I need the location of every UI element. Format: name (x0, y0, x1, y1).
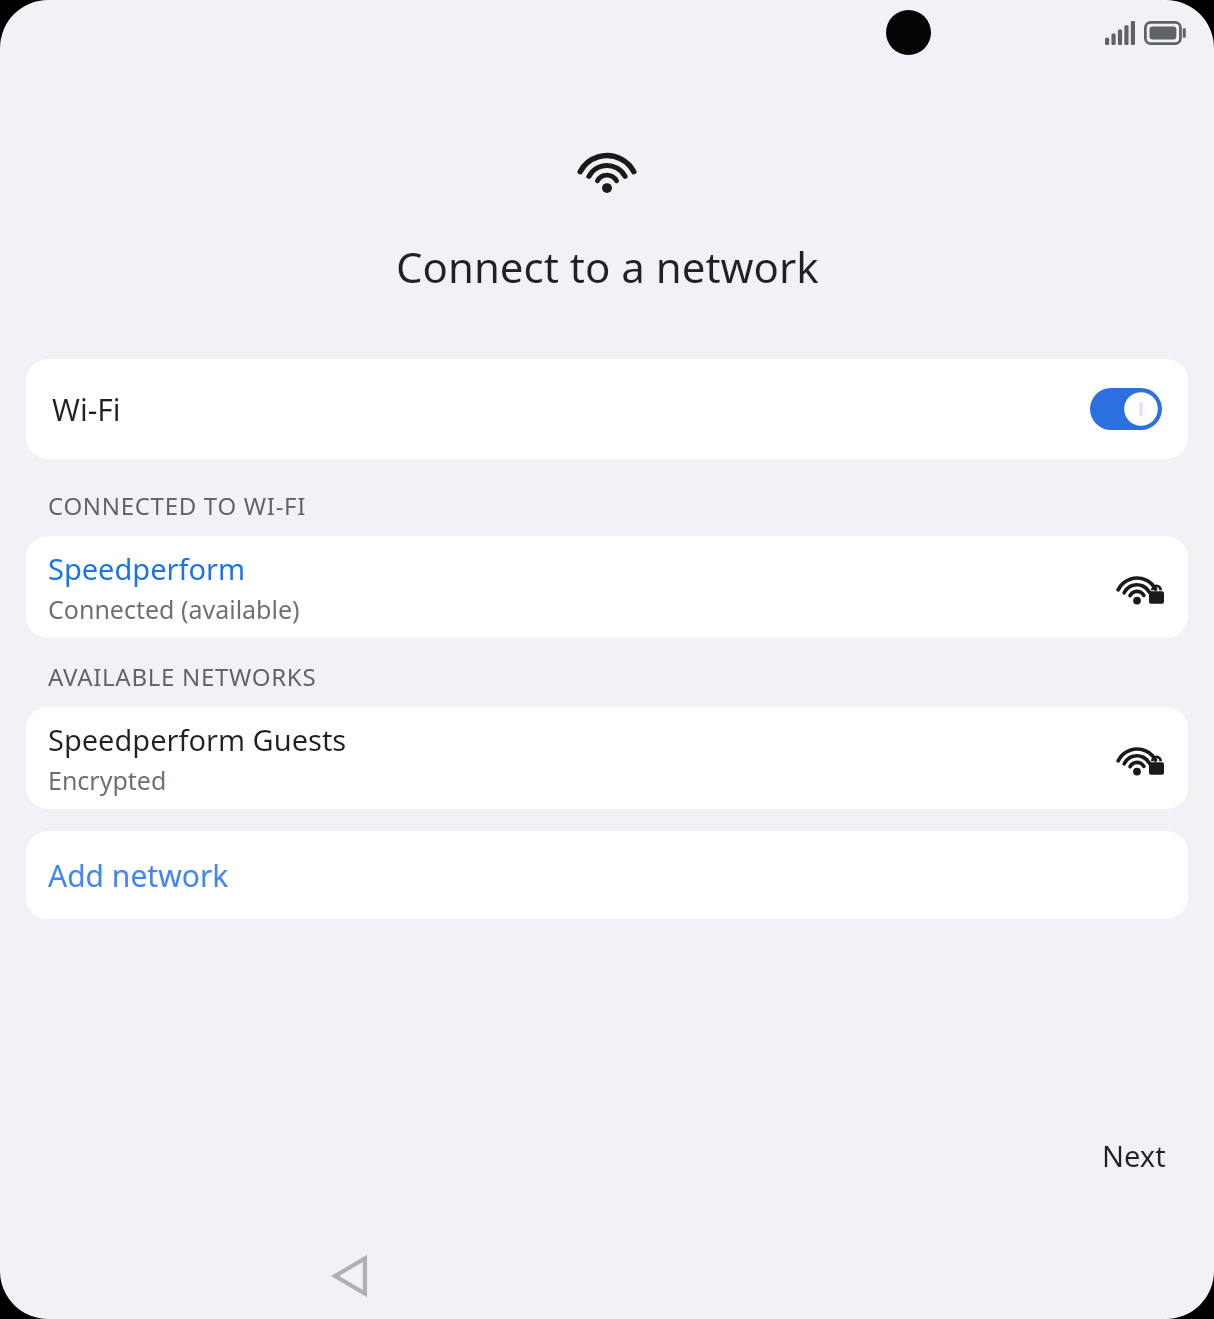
button[interactable]: Add network (26, 831, 1188, 919)
staticText: Speedperform (48, 549, 246, 588)
button[interactable]: Speedperform Guests (26, 707, 1188, 809)
other: Secured network (1114, 561, 1166, 613)
staticText: AVAILABLE NETWORKS (48, 660, 317, 693)
staticText: Next (1102, 1136, 1166, 1175)
other: Wi-Fi on (1090, 388, 1162, 430)
button[interactable]: Back (310, 1236, 390, 1316)
button[interactable]: Speedperform (26, 536, 1188, 638)
staticText: Encrypted (48, 763, 167, 797)
staticText: Connected (available) (48, 592, 300, 626)
button[interactable]: Wi-Fi (26, 359, 1188, 459)
button[interactable]: Next (1080, 1124, 1188, 1187)
staticText: CONNECTED TO WI-FI (48, 489, 307, 522)
staticText: Add network (48, 855, 229, 896)
staticText: Wi-Fi (52, 389, 121, 430)
staticText: Speedperform Guests (48, 720, 347, 759)
other: Secured network (1114, 732, 1166, 784)
staticText: Connect to a network (396, 238, 819, 295)
